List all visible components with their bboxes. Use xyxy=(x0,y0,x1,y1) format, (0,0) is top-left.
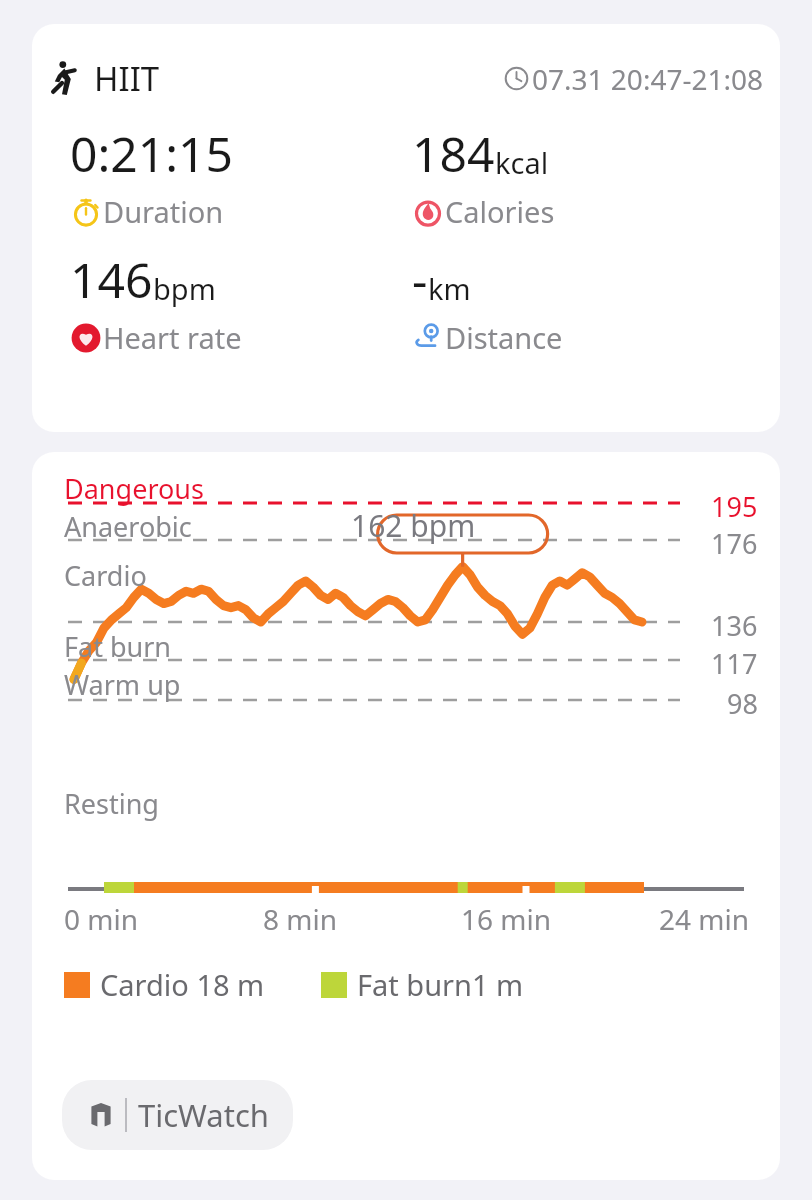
staticText: Cardio xyxy=(64,557,147,594)
other: Time xyxy=(503,65,530,92)
staticText: 146 xyxy=(70,247,153,312)
staticText: kcal xyxy=(495,143,549,182)
staticText: Distance xyxy=(445,318,563,357)
staticText: Fat burn1 m xyxy=(357,965,524,1004)
staticText: - xyxy=(412,247,428,312)
staticText: 117 xyxy=(711,645,758,682)
staticText: 136 xyxy=(711,607,758,644)
staticText: 176 xyxy=(711,525,758,562)
staticText: Calories xyxy=(445,192,555,231)
staticText: 24 min xyxy=(659,900,750,938)
button[interactable]: TicWatch xyxy=(62,1080,293,1150)
staticText: Dangerous xyxy=(64,470,204,507)
button[interactable]: HIIT workout xyxy=(32,24,780,432)
staticText: 184 xyxy=(412,121,495,186)
staticText: bpm xyxy=(153,269,216,308)
staticText: Fat burn xyxy=(64,628,172,665)
staticText: Heart rate xyxy=(103,318,242,357)
staticText: 0:21:15 xyxy=(70,121,234,186)
staticText: 07.31 20:47-21:08 xyxy=(532,60,764,98)
staticText: Resting xyxy=(64,785,159,822)
staticText: 8 min xyxy=(263,900,461,938)
staticText: Duration xyxy=(103,192,224,231)
staticText: 16 min xyxy=(461,900,659,938)
button[interactable]: 184 xyxy=(412,121,780,231)
staticText: 195 xyxy=(711,488,758,525)
staticText: 98 xyxy=(727,685,758,722)
button[interactable]: 146 xyxy=(70,247,406,357)
staticText: HIIT xyxy=(94,56,160,101)
staticText: Anaerobic xyxy=(64,508,192,545)
staticText: 162 bpm xyxy=(351,505,476,546)
staticText: Warm up xyxy=(64,666,181,703)
staticText: km xyxy=(428,269,471,308)
button[interactable]: 0:21:15 xyxy=(70,121,406,231)
staticText: Cardio 18 m xyxy=(100,965,265,1004)
other: HIIT workout xyxy=(46,59,86,99)
staticText: TicWatch xyxy=(138,1094,269,1136)
button[interactable]: - xyxy=(412,247,780,357)
staticText: 0 min xyxy=(64,900,263,938)
